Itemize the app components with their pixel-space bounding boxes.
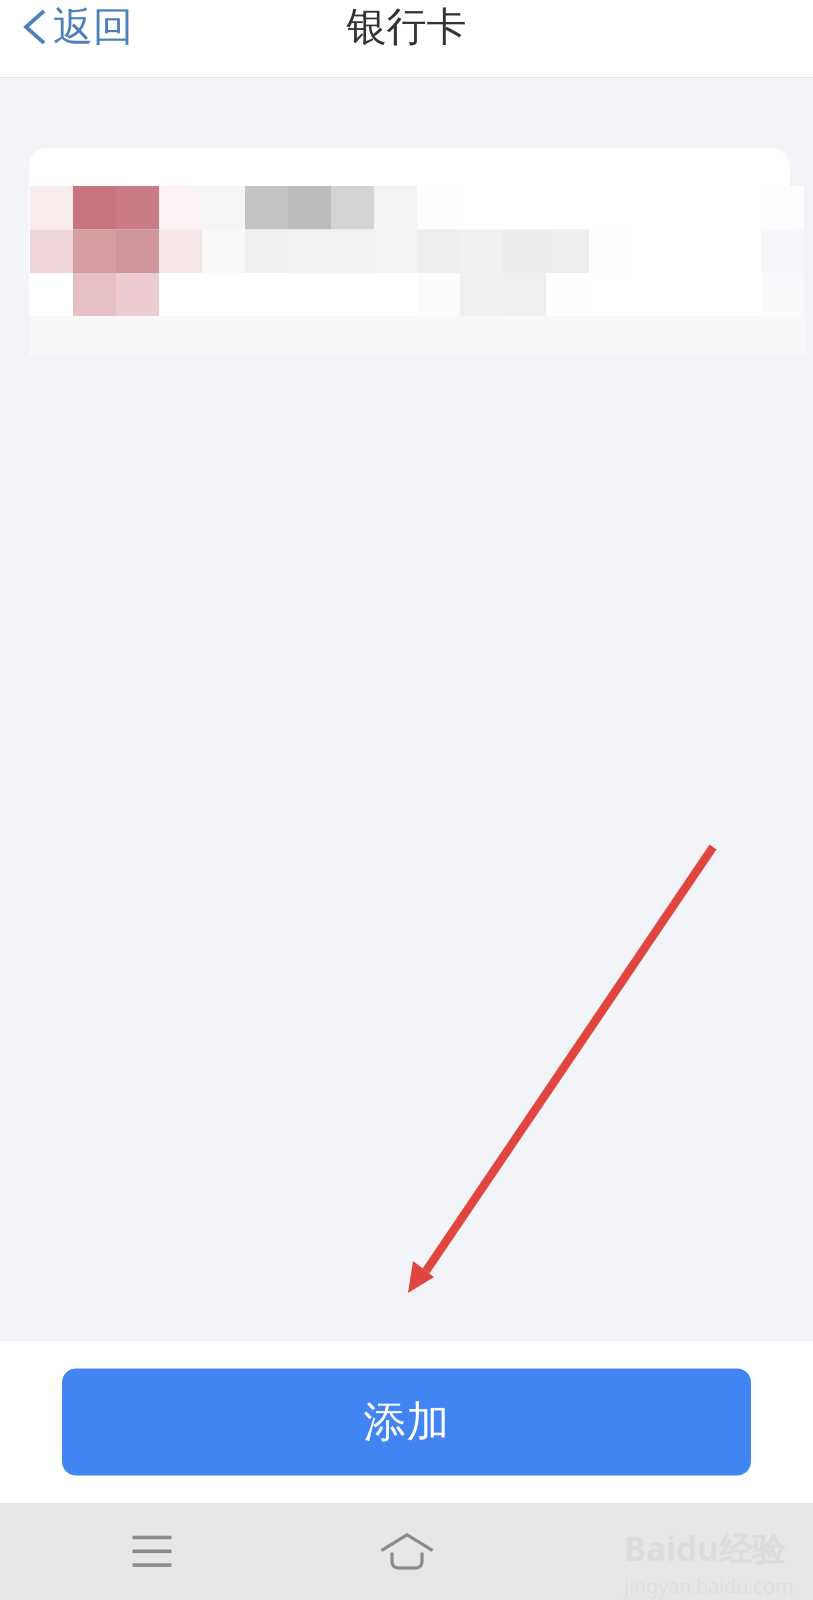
- staticText: 添加: [363, 1396, 449, 1448]
- button[interactable]: Menu: [97, 1503, 207, 1600]
- staticText: Baidu经验: [624, 1526, 785, 1570]
- staticText: 返回: [53, 2, 133, 51]
- button[interactable]: 添加: [62, 1368, 751, 1475]
- button[interactable]: 返回: [0, 0, 153, 54]
- button[interactable]: Home: [352, 1503, 462, 1600]
- staticText: 银行卡: [346, 2, 466, 51]
